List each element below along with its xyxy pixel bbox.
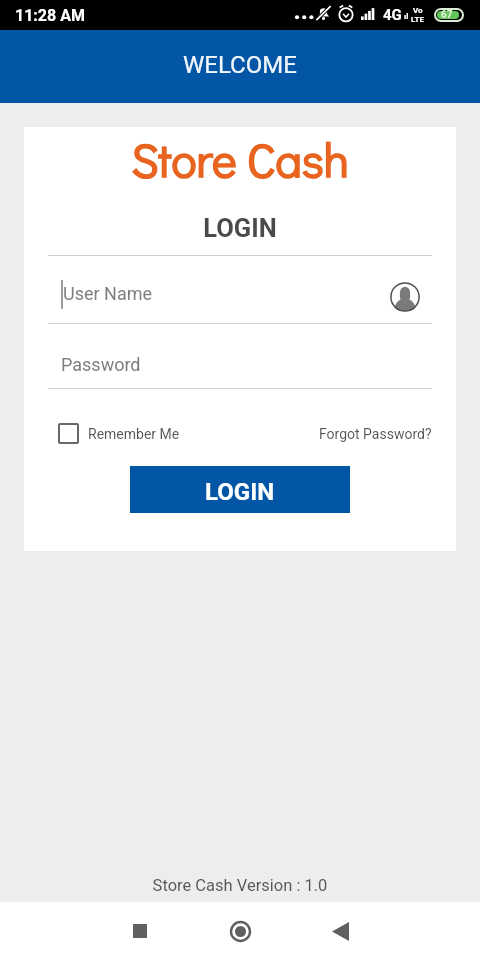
staticText: LOGIN [24, 213, 456, 243]
staticText: Store Cash [24, 128, 456, 190]
staticText: Remember Me [88, 426, 180, 442]
staticText: 11:28 AM [15, 6, 85, 25]
button[interactable]: Recent apps [112, 903, 168, 959]
staticText: Store Cash Version : 1.0 [0, 876, 480, 895]
staticText: Password [61, 354, 141, 375]
staticText: Vo [413, 6, 423, 15]
staticText: WELCOME [183, 51, 297, 79]
staticText: User Name [63, 283, 153, 304]
button[interactable]: User Name [48, 267, 432, 323]
button[interactable]: LOGIN [130, 466, 350, 513]
button[interactable]: Back [312, 903, 368, 959]
staticText: Store Cash [24, 128, 456, 190]
button[interactable]: Remember Me [48, 423, 170, 444]
button[interactable]: Password [48, 334, 432, 394]
button[interactable]: Forgot Password? [319, 426, 432, 442]
staticText: ıl [404, 12, 409, 21]
staticText: 67 [441, 9, 453, 21]
staticText: LOGIN [205, 478, 275, 506]
staticText: 4G [383, 6, 402, 24]
staticText: LTE [411, 15, 424, 24]
button[interactable]: Home [212, 903, 268, 959]
